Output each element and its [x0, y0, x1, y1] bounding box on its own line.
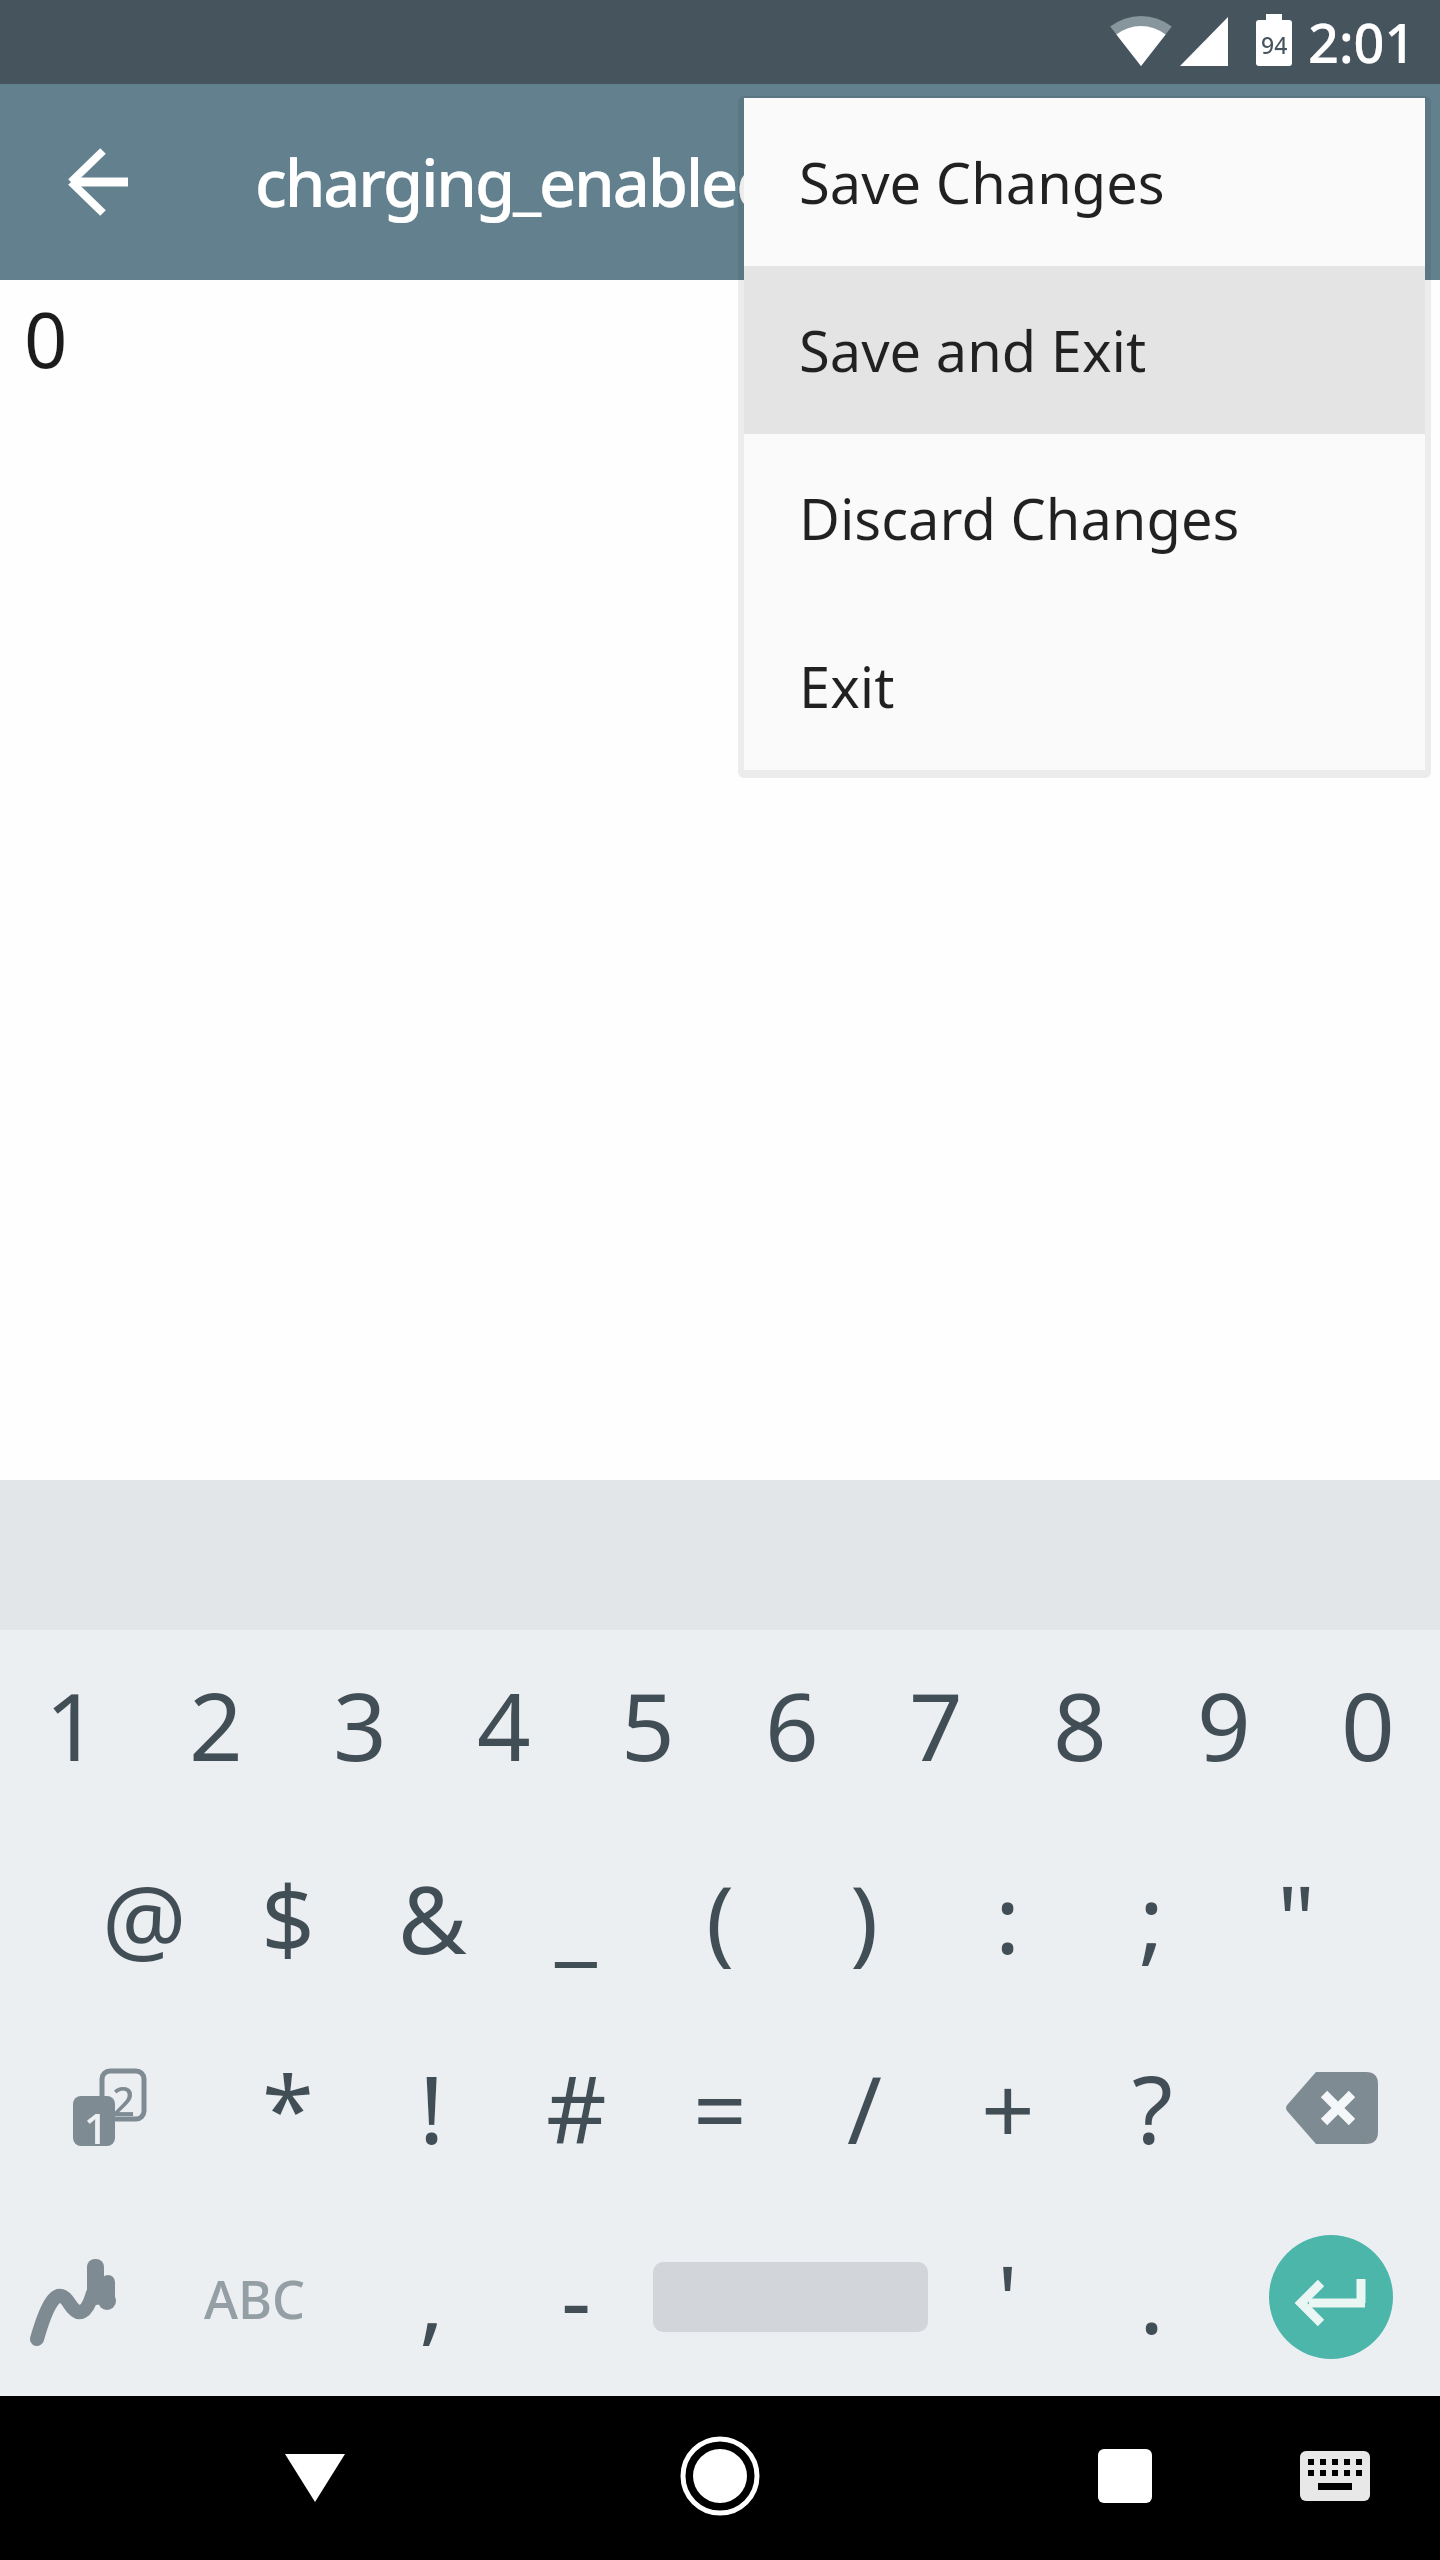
button[interactable]: ABC — [183, 2203, 327, 2393]
staticText: 1 — [84, 2099, 109, 2156]
staticText: + — [981, 2044, 1035, 2172]
button[interactable] — [1269, 2235, 1393, 2359]
button[interactable]: 4 — [432, 1630, 576, 1820]
staticText: $ — [261, 1854, 315, 1982]
staticText: 9 — [1197, 1661, 1251, 1789]
button[interactable] — [1260, 2013, 1404, 2203]
staticText: _ — [555, 1854, 597, 1982]
button[interactable]: " — [1224, 1823, 1368, 2013]
staticText: ; — [1139, 1854, 1165, 1982]
staticText: Save Changes — [799, 144, 1165, 220]
staticText: 1 — [45, 1661, 99, 1789]
button[interactable]: # — [504, 2013, 648, 2203]
button[interactable]: ) — [792, 1823, 936, 2013]
staticText: ABC — [204, 2263, 306, 2334]
staticText: 0 — [24, 287, 68, 391]
button[interactable]: 3 — [288, 1630, 432, 1820]
staticText: 7 — [909, 1661, 963, 1789]
button[interactable] — [1045, 2396, 1205, 2556]
staticText: 0 — [1341, 1661, 1395, 1789]
staticText: ! — [419, 2044, 445, 2172]
staticText: 2 — [189, 1661, 243, 1789]
staticText: @ — [102, 1854, 187, 1982]
button[interactable]: * — [216, 2013, 360, 2203]
button[interactable]: ( — [648, 1823, 792, 2013]
button[interactable]: 7 — [864, 1630, 1008, 1820]
button[interactable] — [43, 126, 155, 238]
button[interactable]: . — [1080, 2203, 1224, 2393]
staticText: , — [419, 2234, 445, 2362]
staticText: 2:01 — [1308, 5, 1416, 79]
button[interactable]: _ — [504, 1823, 648, 2013]
staticText: : — [995, 1854, 1021, 1982]
staticText: - — [561, 2234, 592, 2362]
staticText: 6 — [765, 1661, 819, 1789]
button[interactable]: - — [504, 2203, 648, 2393]
staticText: # — [546, 2044, 607, 2172]
button[interactable]: = — [648, 2013, 792, 2203]
button[interactable]: ' — [936, 2203, 1080, 2393]
staticText: 3 — [333, 1661, 387, 1789]
staticText: 8 — [1053, 1661, 1107, 1789]
staticText: = — [693, 2044, 747, 2172]
button[interactable]: $ — [216, 1823, 360, 2013]
button[interactable]: 8 — [1008, 1630, 1152, 1820]
button[interactable]: 1 — [0, 1630, 144, 1820]
button[interactable]: 0 — [1296, 1630, 1440, 1820]
button[interactable]: ! — [360, 2013, 504, 2203]
button[interactable]: 5 — [576, 1630, 720, 1820]
staticText: charging_enabled — [255, 138, 775, 227]
staticText: ? — [1132, 2044, 1173, 2172]
staticText: 94 — [1261, 29, 1288, 60]
button[interactable]: Save and Exit — [744, 266, 1425, 434]
staticText: 4 — [477, 1661, 531, 1789]
button[interactable]: Discard Changes — [744, 434, 1425, 602]
button[interactable]: + — [936, 2013, 1080, 2203]
staticText: ' — [997, 2234, 1019, 2362]
staticText: 5 — [621, 1661, 675, 1789]
button[interactable]: / — [792, 2013, 936, 2203]
staticText: . — [1139, 2234, 1165, 2362]
staticText: ) — [850, 1854, 879, 1982]
staticText: & — [398, 1854, 467, 1982]
staticText: * — [262, 2044, 314, 2172]
button[interactable]: ? — [1080, 2013, 1224, 2203]
staticText: 2 — [112, 2073, 135, 2127]
button[interactable]: 9 — [1152, 1630, 1296, 1820]
staticText: ( — [706, 1854, 735, 1982]
button[interactable] — [235, 2398, 395, 2558]
staticText: / — [847, 2044, 882, 2172]
button[interactable]: ; — [1080, 1823, 1224, 2013]
staticText: Save and Exit — [799, 312, 1147, 388]
button[interactable] — [640, 2396, 800, 2556]
staticText: Exit — [799, 648, 895, 724]
button[interactable]: 6 — [720, 1630, 864, 1820]
button[interactable]: 2 — [36, 2013, 180, 2203]
button[interactable]: Exit — [744, 602, 1425, 770]
button[interactable]: Save Changes — [744, 98, 1425, 266]
button[interactable]: , — [360, 2203, 504, 2393]
button[interactable] — [1265, 2398, 1405, 2554]
button[interactable]: 2 — [144, 1630, 288, 1820]
staticText: Discard Changes — [799, 480, 1240, 556]
button[interactable]: : — [936, 1823, 1080, 2013]
button[interactable]: & — [360, 1823, 504, 2013]
button[interactable]: @ — [72, 1823, 216, 2013]
staticText: " — [1277, 1854, 1316, 1982]
button[interactable] — [6, 2203, 150, 2393]
